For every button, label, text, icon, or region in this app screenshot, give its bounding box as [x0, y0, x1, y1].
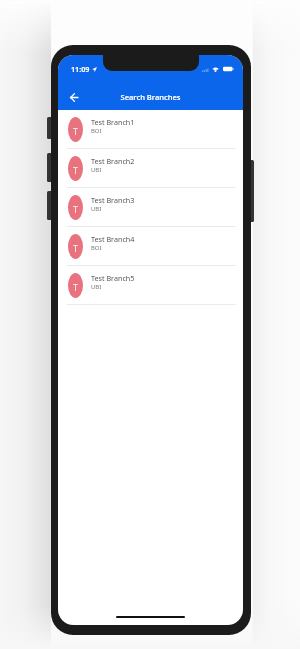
staticText: Test Branch3 [91, 195, 135, 205]
staticText: Test Branch4 [91, 234, 135, 244]
button[interactable]: T [58, 227, 243, 266]
staticText: UBI [91, 283, 102, 291]
staticText: T [73, 281, 79, 293]
staticText: T [73, 164, 79, 176]
staticText: Search Branches [120, 92, 181, 102]
staticText: UBI [91, 205, 102, 213]
button[interactable]: Back [64, 87, 83, 107]
staticText: Test Branch5 [91, 273, 135, 283]
button[interactable]: T [58, 266, 243, 305]
button[interactable]: T [58, 188, 243, 227]
staticText: 11:09 [71, 64, 90, 74]
staticText: BOI [91, 244, 102, 252]
staticText: T [73, 242, 79, 254]
staticText: T [73, 203, 79, 215]
staticText: UBI [91, 166, 102, 174]
button[interactable]: T [58, 110, 243, 149]
staticText: Test Branch1 [91, 117, 135, 127]
staticText: Test Branch2 [91, 156, 135, 166]
staticText: T [73, 125, 79, 137]
staticText: BOI [91, 127, 102, 135]
button[interactable]: T [58, 149, 243, 188]
